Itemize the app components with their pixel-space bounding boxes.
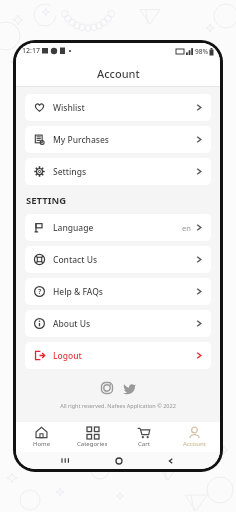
staticText: ?	[38, 287, 42, 297]
button[interactable]: Instagram	[100, 381, 114, 395]
staticText: Language	[53, 222, 94, 234]
button[interactable]: Logout	[25, 342, 211, 369]
staticText: Categories	[77, 440, 108, 448]
button[interactable]: Contact Us	[25, 246, 211, 273]
staticText: About Us	[53, 318, 91, 330]
staticText: 12:17	[22, 46, 40, 56]
button[interactable]: Cart	[118, 422, 169, 452]
staticText: 98%	[195, 47, 208, 56]
staticText: SETTING	[26, 194, 67, 207]
button[interactable]: ?	[25, 278, 211, 305]
button[interactable]: Settings	[25, 158, 211, 185]
button[interactable]: Categories	[67, 422, 118, 452]
staticText: All right reserved. Nafees Application ©…	[25, 402, 211, 409]
staticText: en	[182, 223, 191, 233]
staticText: Logout	[53, 350, 82, 362]
staticText: Wishlist	[53, 102, 85, 114]
staticText: Account	[97, 66, 140, 81]
staticText: Home	[33, 440, 51, 448]
staticText: My Purchases	[53, 134, 109, 146]
staticText: Settings	[53, 166, 87, 178]
button[interactable]: Language	[25, 214, 211, 241]
button[interactable]: Home	[16, 422, 67, 452]
staticText: Help & FAQs	[53, 286, 103, 298]
button[interactable]: About Us	[25, 310, 211, 337]
button[interactable]: Twitter	[123, 381, 137, 395]
button[interactable]: My Purchases	[25, 126, 211, 153]
staticText: Cart	[138, 440, 150, 448]
button[interactable]: Account	[169, 422, 220, 452]
staticText: Contact Us	[53, 254, 98, 266]
staticText: Account	[183, 440, 206, 448]
button[interactable]: Wishlist	[25, 94, 211, 121]
